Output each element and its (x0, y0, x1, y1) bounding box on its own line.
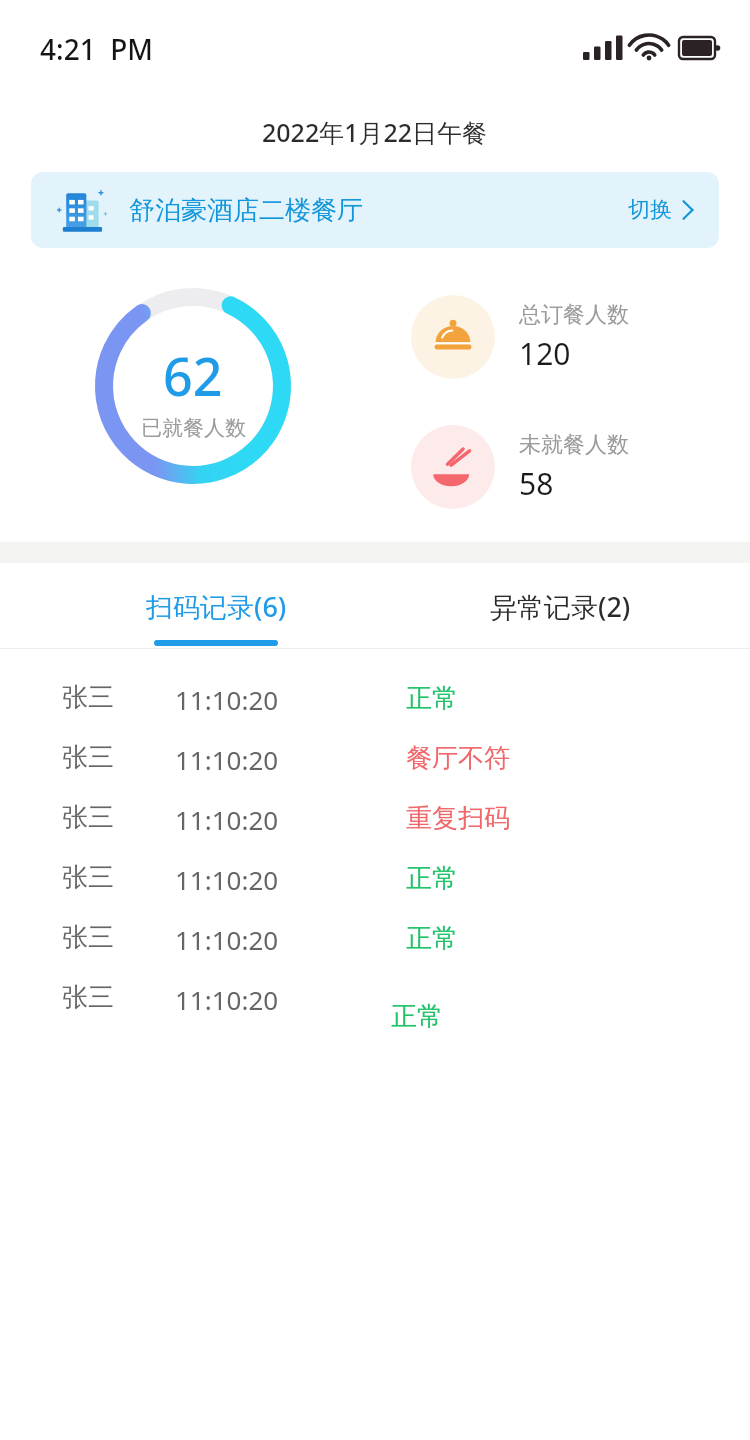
staticText: 11:10:20 (175, 742, 279, 777)
staticText: 异常记录(2) (490, 588, 631, 625)
staticText: 58 (519, 463, 554, 504)
staticText: 舒泊豪酒店二楼餐厅 (129, 194, 363, 227)
button[interactable]: Restaurant (31, 172, 719, 248)
staticText: 11:10:20 (175, 802, 279, 837)
staticText: 切换 (628, 196, 672, 224)
staticText: 未就餐人数 (519, 431, 629, 459)
staticText: 2022年1月22日午餐 (262, 115, 488, 149)
other: Not dined (430, 444, 476, 490)
staticText: 总订餐人数 (519, 301, 629, 329)
button[interactable]: 张三 (0, 788, 750, 848)
staticText: 重复扫码 (406, 802, 510, 835)
staticText: 120 (519, 333, 571, 374)
staticText: 餐厅不符 (406, 742, 510, 775)
button[interactable]: 张三 (0, 668, 750, 728)
button[interactable]: 扫码记录(6) (56, 563, 376, 649)
button[interactable]: 张三 (0, 848, 750, 908)
staticText: 已就餐人数 (141, 415, 246, 441)
other: Restaurant (55, 186, 111, 234)
staticText: 62 (163, 340, 223, 411)
staticText: 张三 (62, 921, 114, 954)
staticText: 正常 (406, 682, 458, 715)
staticText: 张三 (62, 741, 114, 774)
staticText: 11:10:20 (175, 862, 279, 897)
button[interactable]: 异常记录(2) (400, 563, 720, 649)
staticText: 张三 (62, 681, 114, 714)
staticText: 张三 (62, 861, 114, 894)
button[interactable]: 张三 (0, 968, 750, 1028)
staticText: 11:10:20 (175, 682, 279, 717)
staticText: 张三 (62, 981, 114, 1014)
staticText: 正常 (406, 862, 458, 895)
button[interactable]: 张三 (0, 728, 750, 788)
button[interactable]: 张三 (0, 908, 750, 968)
other: Total orders (430, 314, 476, 360)
staticText: 4:21 PM (40, 30, 154, 68)
staticText: 11:10:20 (175, 982, 279, 1017)
staticText: 正常 (406, 922, 458, 955)
staticText: 11:10:20 (175, 922, 279, 957)
staticText: 张三 (62, 801, 114, 834)
staticText: 正常 (391, 1000, 443, 1033)
staticText: 扫码记录(6) (146, 588, 287, 625)
